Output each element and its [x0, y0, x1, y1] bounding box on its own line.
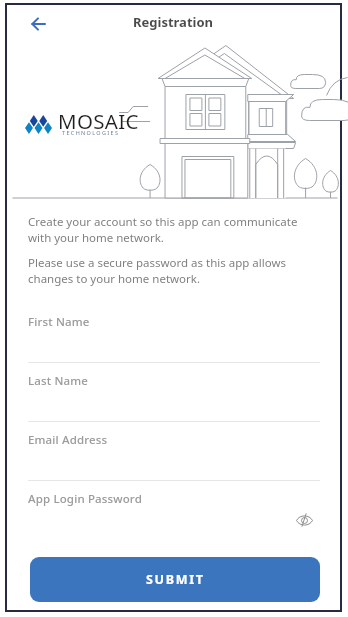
staticText: TECHNOLOGIES	[62, 129, 120, 136]
staticText: Please use a secure password as this app…	[28, 255, 300, 286]
button[interactable]: Last Name	[28, 371, 320, 430]
staticText: Create your account so this app can comm…	[28, 214, 300, 245]
button[interactable]: SUBMIT	[30, 557, 320, 602]
button[interactable]: First Name	[28, 312, 320, 371]
staticText: MOSAIC	[58, 107, 139, 133]
button[interactable]: Back	[25, 11, 51, 37]
button[interactable]: Show password	[292, 508, 316, 532]
button[interactable]: App Login Password	[28, 489, 320, 548]
staticText: Last Name	[28, 373, 89, 389]
staticText: SUBMIT	[146, 571, 205, 588]
staticText: First Name	[28, 314, 90, 330]
button[interactable]: Email Address	[28, 430, 320, 489]
staticText: App Login Password	[28, 491, 142, 507]
staticText: Registration	[133, 13, 214, 31]
staticText: Email Address	[28, 432, 108, 448]
